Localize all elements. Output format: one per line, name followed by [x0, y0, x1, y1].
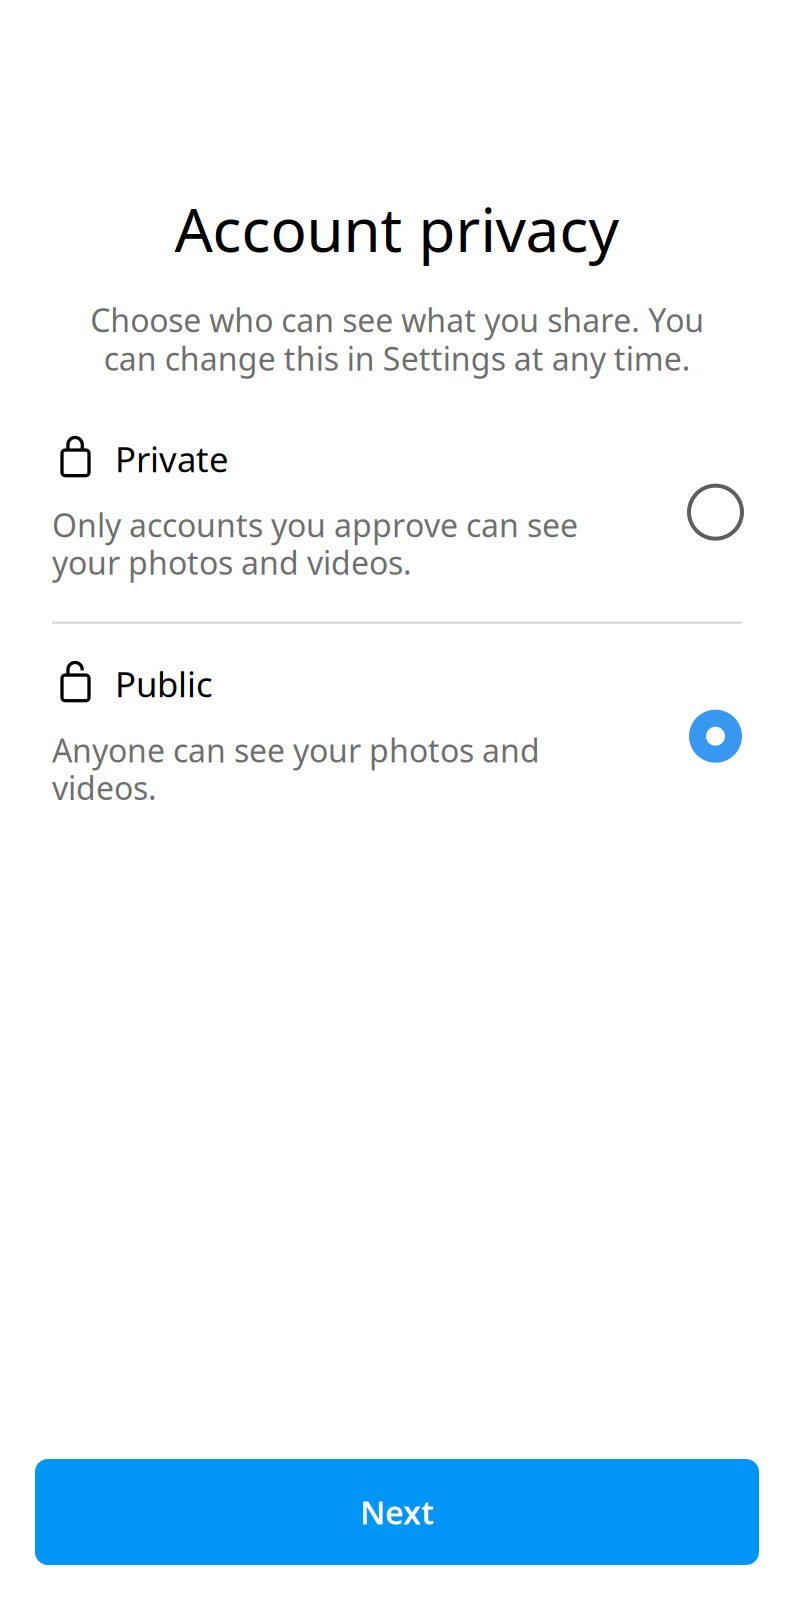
- staticText: Only accounts you approve can see your p…: [52, 504, 578, 584]
- staticText: Public: [115, 661, 213, 707]
- button[interactable]: Private: [0, 380, 794, 622]
- staticText: Private: [115, 436, 229, 482]
- staticText: Choose who can see what you share. You c…: [90, 299, 704, 380]
- staticText: Anyone can see your photos and videos.: [52, 729, 540, 809]
- button[interactable]: Public: [0, 624, 794, 809]
- staticText: Account privacy: [174, 189, 619, 269]
- staticText: Next: [360, 1491, 434, 1533]
- button[interactable]: Next: [35, 1459, 759, 1565]
